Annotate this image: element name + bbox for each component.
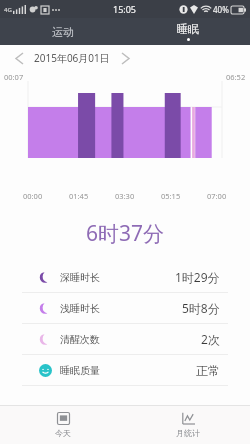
staticText: 清醒次数	[60, 333, 100, 346]
staticText: 05:15	[161, 191, 181, 201]
staticText: 01:45	[69, 191, 89, 201]
staticText: 06:52	[226, 72, 246, 82]
staticText: 00:07	[4, 72, 24, 82]
staticText: 15:05	[113, 3, 137, 15]
button[interactable]: 清醒次数	[0, 324, 250, 354]
staticText: 月统计	[176, 428, 200, 438]
staticText: 睡眠质量	[60, 364, 100, 377]
staticText: 运动	[52, 25, 74, 39]
staticText: 深睡时长	[60, 271, 100, 284]
staticText: 正常	[196, 363, 220, 378]
staticText: 03:30	[115, 191, 135, 201]
staticText: 4G	[4, 6, 12, 14]
button[interactable]: 今天	[0, 406, 125, 444]
staticText: 浅睡时长	[60, 302, 100, 315]
button[interactable]: 睡眠	[125, 18, 250, 45]
button[interactable]: 深睡时长	[0, 262, 250, 292]
button[interactable]: 浅睡时长	[0, 293, 250, 323]
button[interactable]: Previous day	[10, 49, 28, 67]
staticText: 1时29分	[175, 269, 220, 285]
staticText: 6时37分	[0, 219, 250, 248]
staticText: 2015年06月01日	[34, 51, 110, 65]
button[interactable]: 月统计	[125, 406, 250, 444]
staticText: 00:00	[23, 191, 43, 201]
staticText: 2次	[201, 331, 220, 347]
button[interactable]: Next day	[116, 49, 134, 67]
button[interactable]: 运动	[0, 18, 125, 45]
staticText: 睡眠	[177, 22, 199, 36]
staticText: 5时8分	[182, 300, 220, 316]
staticText: 40%	[213, 4, 229, 15]
staticText: 今天	[55, 428, 71, 438]
button[interactable]: 睡眠质量	[0, 355, 250, 385]
staticText: 07:00	[207, 191, 227, 201]
